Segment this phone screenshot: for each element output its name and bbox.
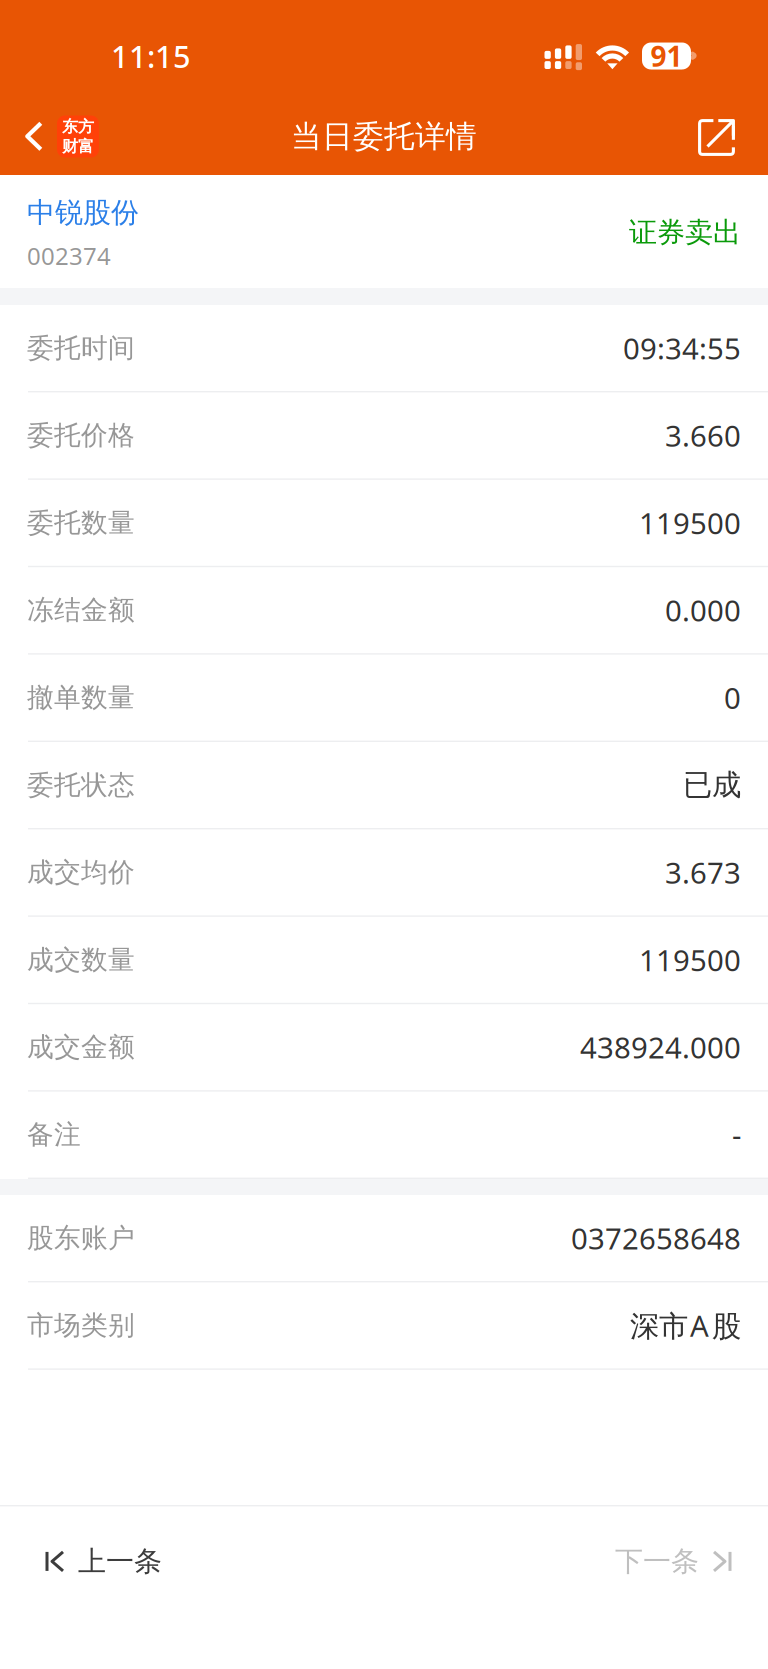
staticText: 中锐股份 xyxy=(27,195,139,230)
staticText: 证券卖出 xyxy=(629,215,741,250)
staticText: 上一条 xyxy=(78,1544,162,1579)
staticText: 深市 A 股 xyxy=(630,1306,741,1345)
staticText: 备注 xyxy=(27,1118,81,1151)
staticText: 成交均价 xyxy=(27,856,135,889)
staticText: 市场类别 xyxy=(27,1309,135,1342)
staticText: 东方 xyxy=(62,117,94,136)
staticText: 财富 xyxy=(62,136,94,156)
staticText: 438924.000 xyxy=(580,1028,741,1067)
staticText: 3.673 xyxy=(665,853,741,892)
staticText: 委托时间 xyxy=(27,332,135,364)
staticText: 119500 xyxy=(639,940,741,979)
staticText: 91 xyxy=(650,37,682,75)
button[interactable]: Back xyxy=(0,88,113,175)
staticText: 09:34:55 xyxy=(623,328,741,367)
staticText: 委托数量 xyxy=(27,506,135,539)
staticText: 成交数量 xyxy=(27,943,135,976)
staticText: 0 xyxy=(724,678,741,717)
staticText: 3.660 xyxy=(665,416,741,455)
staticText: 002374 xyxy=(27,240,111,272)
staticText: 冻结金额 xyxy=(27,594,135,627)
staticText: 已成 xyxy=(683,767,741,803)
staticText: - xyxy=(732,1115,741,1154)
staticText: 下一条 xyxy=(615,1544,699,1579)
staticText: 当日委托详情 xyxy=(291,118,477,155)
staticText: 0.000 xyxy=(665,591,741,630)
staticText: 0372658648 xyxy=(571,1218,741,1257)
staticText: 119500 xyxy=(639,503,741,542)
staticText: 成交金额 xyxy=(27,1031,135,1064)
button[interactable]: Share xyxy=(674,88,768,175)
staticText: 委托价格 xyxy=(27,419,135,452)
staticText: 股东账户 xyxy=(27,1222,135,1254)
button[interactable]: 下一条 xyxy=(580,1506,768,1616)
staticText: 撤单数量 xyxy=(27,681,135,714)
staticText: 11:15 xyxy=(111,36,191,76)
button[interactable]: 上一条 xyxy=(0,1506,206,1616)
staticText: 委托状态 xyxy=(27,769,135,801)
